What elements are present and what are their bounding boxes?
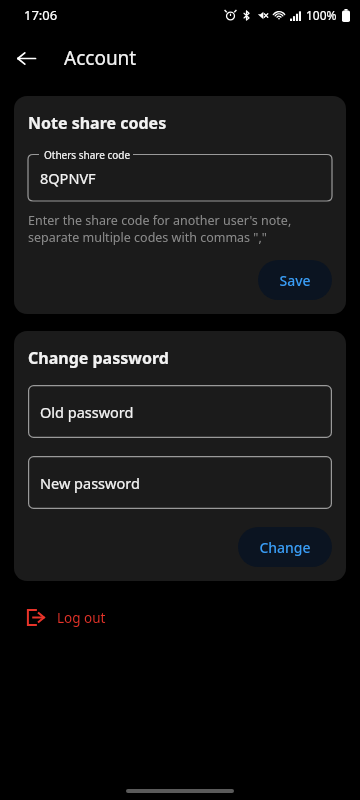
staticText: Enter the share code for another user's … (28, 212, 332, 246)
staticText: New password (40, 473, 140, 493)
staticText: Change (259, 538, 311, 557)
staticText: Others share code (44, 148, 131, 162)
button[interactable]: Change (238, 527, 332, 567)
staticText: 100% (306, 7, 337, 23)
button[interactable]: Old password (28, 385, 332, 438)
staticText: Account (64, 45, 137, 71)
staticText: 8QPNVF (40, 168, 96, 188)
staticText: Note share codes (28, 112, 167, 134)
staticText: 17:06 (24, 6, 58, 24)
button[interactable]: Log out (18, 602, 120, 633)
button[interactable]: New password (28, 456, 332, 509)
button[interactable]: Back (9, 41, 43, 75)
staticText: Change password (28, 347, 169, 369)
staticText: Old password (40, 402, 134, 422)
staticText: Save (279, 271, 311, 290)
button[interactable]: Save (258, 260, 332, 300)
staticText: Log out (57, 609, 106, 627)
